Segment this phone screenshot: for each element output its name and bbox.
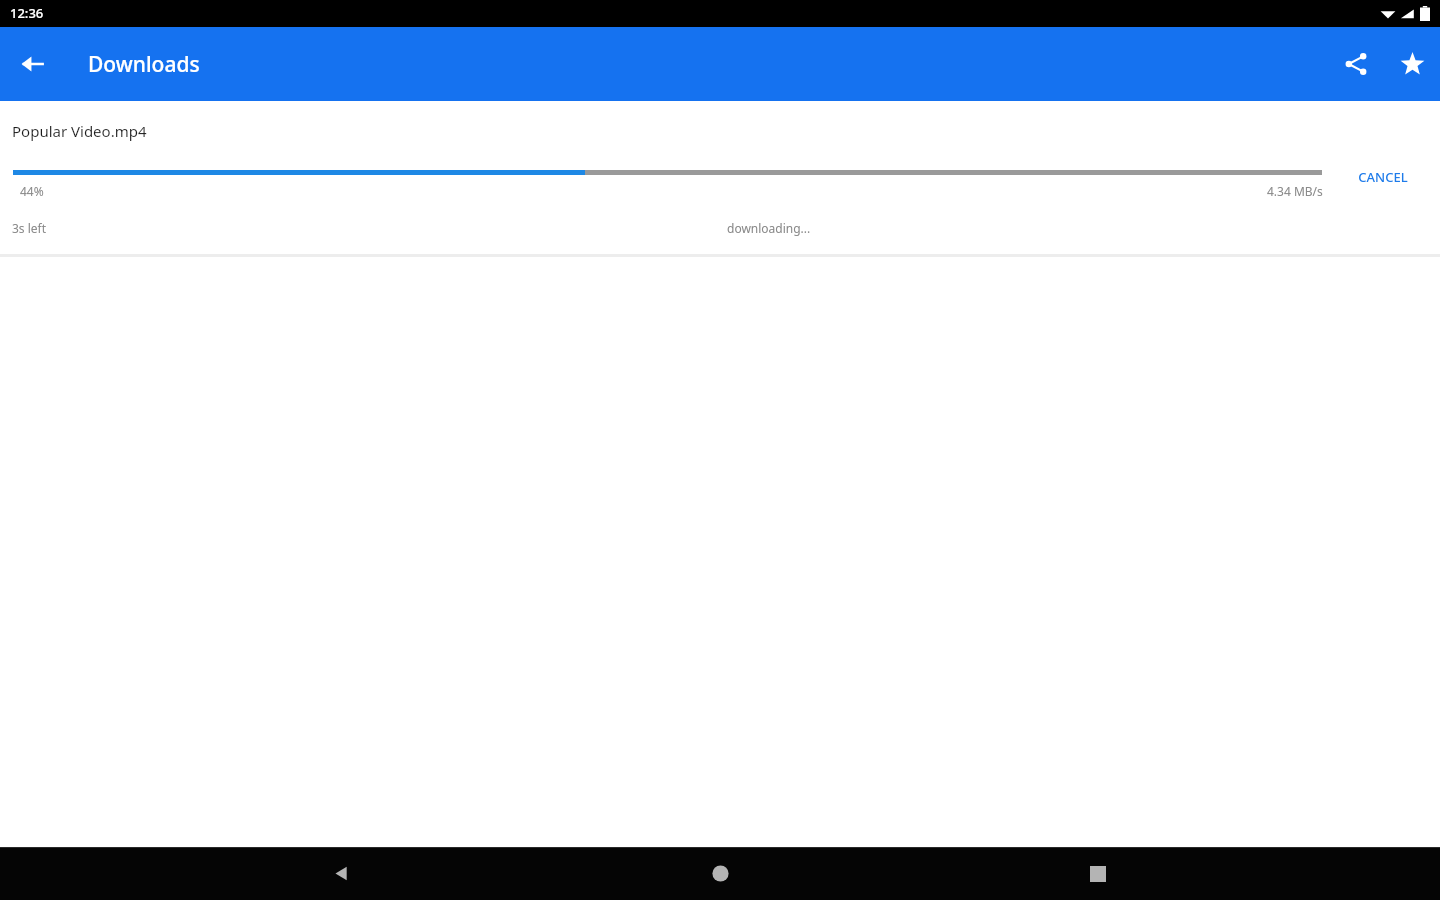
staticText: 44% <box>20 183 44 199</box>
staticText: CANCEL <box>1358 168 1408 186</box>
staticText: Popular Video.mp4 <box>12 121 147 141</box>
staticText: 12:36 <box>10 4 44 22</box>
button[interactable]: Favorite <box>1384 36 1440 92</box>
button[interactable]: Back <box>306 847 378 900</box>
button[interactable]: Recent apps <box>1062 847 1134 900</box>
button[interactable]: Home <box>684 847 756 900</box>
staticText: downloading... <box>727 220 811 236</box>
button[interactable]: CANCEL <box>1325 156 1440 198</box>
button[interactable]: Popular Video.mp4 <box>0 101 1440 257</box>
staticText: 3s left <box>12 220 47 236</box>
button[interactable]: Back <box>9 40 57 88</box>
staticText: 4.34 MB/s <box>1267 183 1323 199</box>
button[interactable]: Share <box>1328 36 1384 92</box>
staticText: Downloads <box>88 50 200 79</box>
